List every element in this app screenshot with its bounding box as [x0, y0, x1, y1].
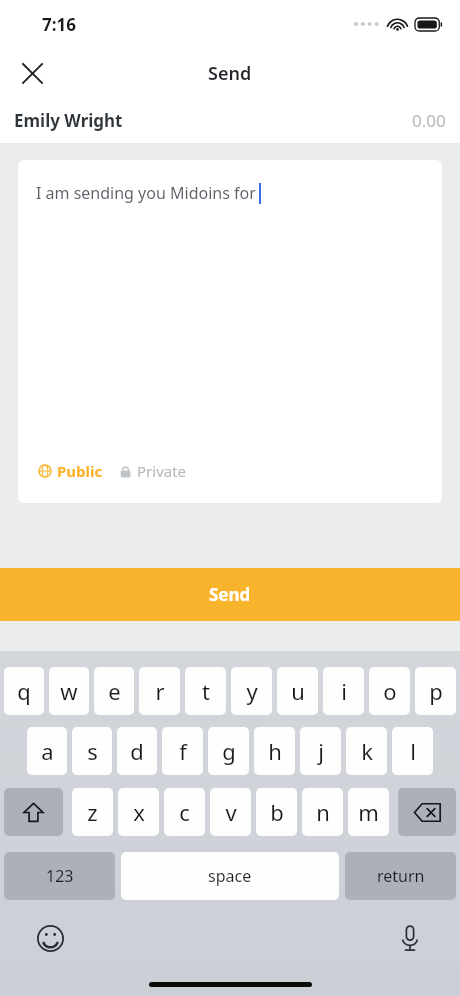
staticText: d: [130, 736, 144, 766]
staticText: k: [361, 736, 373, 766]
staticText: r: [155, 676, 165, 706]
staticText: Send: [209, 583, 251, 606]
button[interactable]: return: [345, 852, 456, 900]
button[interactable]: space: [121, 852, 339, 900]
button[interactable]: o: [369, 667, 410, 715]
staticText: space: [208, 865, 252, 887]
staticText: I am sending you Midoins for: [36, 182, 256, 204]
staticText: z: [87, 797, 98, 827]
button[interactable]: z: [72, 788, 113, 836]
button[interactable]: k: [346, 727, 387, 775]
button[interactable]: a: [27, 727, 67, 775]
button[interactable]: g: [208, 727, 249, 775]
button[interactable]: l: [392, 727, 433, 775]
staticText: m: [358, 797, 379, 827]
staticText: y: [246, 676, 258, 706]
button[interactable]: p: [415, 667, 456, 715]
staticText: g: [222, 736, 236, 766]
button[interactable]: Close: [8, 49, 56, 97]
staticText: a: [41, 736, 54, 766]
staticText: Public: [57, 461, 103, 481]
button[interactable]: w: [49, 667, 89, 715]
staticText: t: [202, 676, 210, 706]
button[interactable]: b: [256, 788, 297, 836]
button[interactable]: Private: [117, 459, 189, 483]
staticText: i: [341, 676, 347, 706]
staticText: h: [268, 736, 282, 766]
staticText: Send: [208, 61, 252, 86]
staticText: Private: [137, 461, 187, 481]
staticText: s: [87, 736, 98, 766]
staticText: x: [133, 797, 145, 827]
button[interactable]: u: [277, 667, 318, 715]
staticText: Emily Wright: [14, 109, 123, 132]
button[interactable]: d: [117, 727, 157, 775]
button[interactable]: s: [72, 727, 112, 775]
staticText: v: [225, 797, 237, 827]
button[interactable]: n: [302, 788, 343, 836]
button[interactable]: x: [118, 788, 159, 836]
button[interactable]: m: [348, 788, 389, 836]
button[interactable]: h: [254, 727, 295, 775]
button[interactable]: q: [4, 667, 44, 715]
button[interactable]: v: [210, 788, 251, 836]
staticText: c: [179, 797, 190, 827]
staticText: p: [429, 676, 443, 706]
button[interactable]: Send: [0, 568, 460, 621]
staticText: e: [108, 676, 121, 706]
button[interactable]: t: [185, 667, 226, 715]
staticText: q: [17, 676, 31, 706]
staticText: w: [60, 676, 78, 706]
button[interactable]: Public: [36, 459, 105, 483]
button[interactable]: r: [139, 667, 180, 715]
button[interactable]: Shift: [4, 788, 63, 836]
staticText: f: [179, 736, 187, 766]
staticText: b: [270, 797, 284, 827]
button[interactable]: Voice input: [390, 918, 430, 958]
staticText: return: [377, 865, 425, 887]
staticText: 7:16: [42, 13, 76, 36]
button[interactable]: i: [323, 667, 364, 715]
button[interactable]: Backspace: [398, 788, 456, 836]
button[interactable]: e: [94, 667, 134, 715]
staticText: j: [318, 736, 324, 766]
button[interactable]: Emoji: [30, 918, 70, 958]
button[interactable]: f: [162, 727, 203, 775]
staticText: l: [410, 736, 416, 766]
button[interactable]: Emily Wright: [0, 98, 460, 143]
button[interactable]: 123: [4, 852, 115, 900]
staticText: o: [383, 676, 397, 706]
staticText: 123: [46, 865, 74, 887]
staticText: 0.00: [412, 109, 446, 132]
staticText: n: [316, 797, 330, 827]
button[interactable]: j: [300, 727, 341, 775]
button[interactable]: c: [164, 788, 205, 836]
button[interactable]: y: [231, 667, 272, 715]
staticText: u: [291, 676, 305, 706]
